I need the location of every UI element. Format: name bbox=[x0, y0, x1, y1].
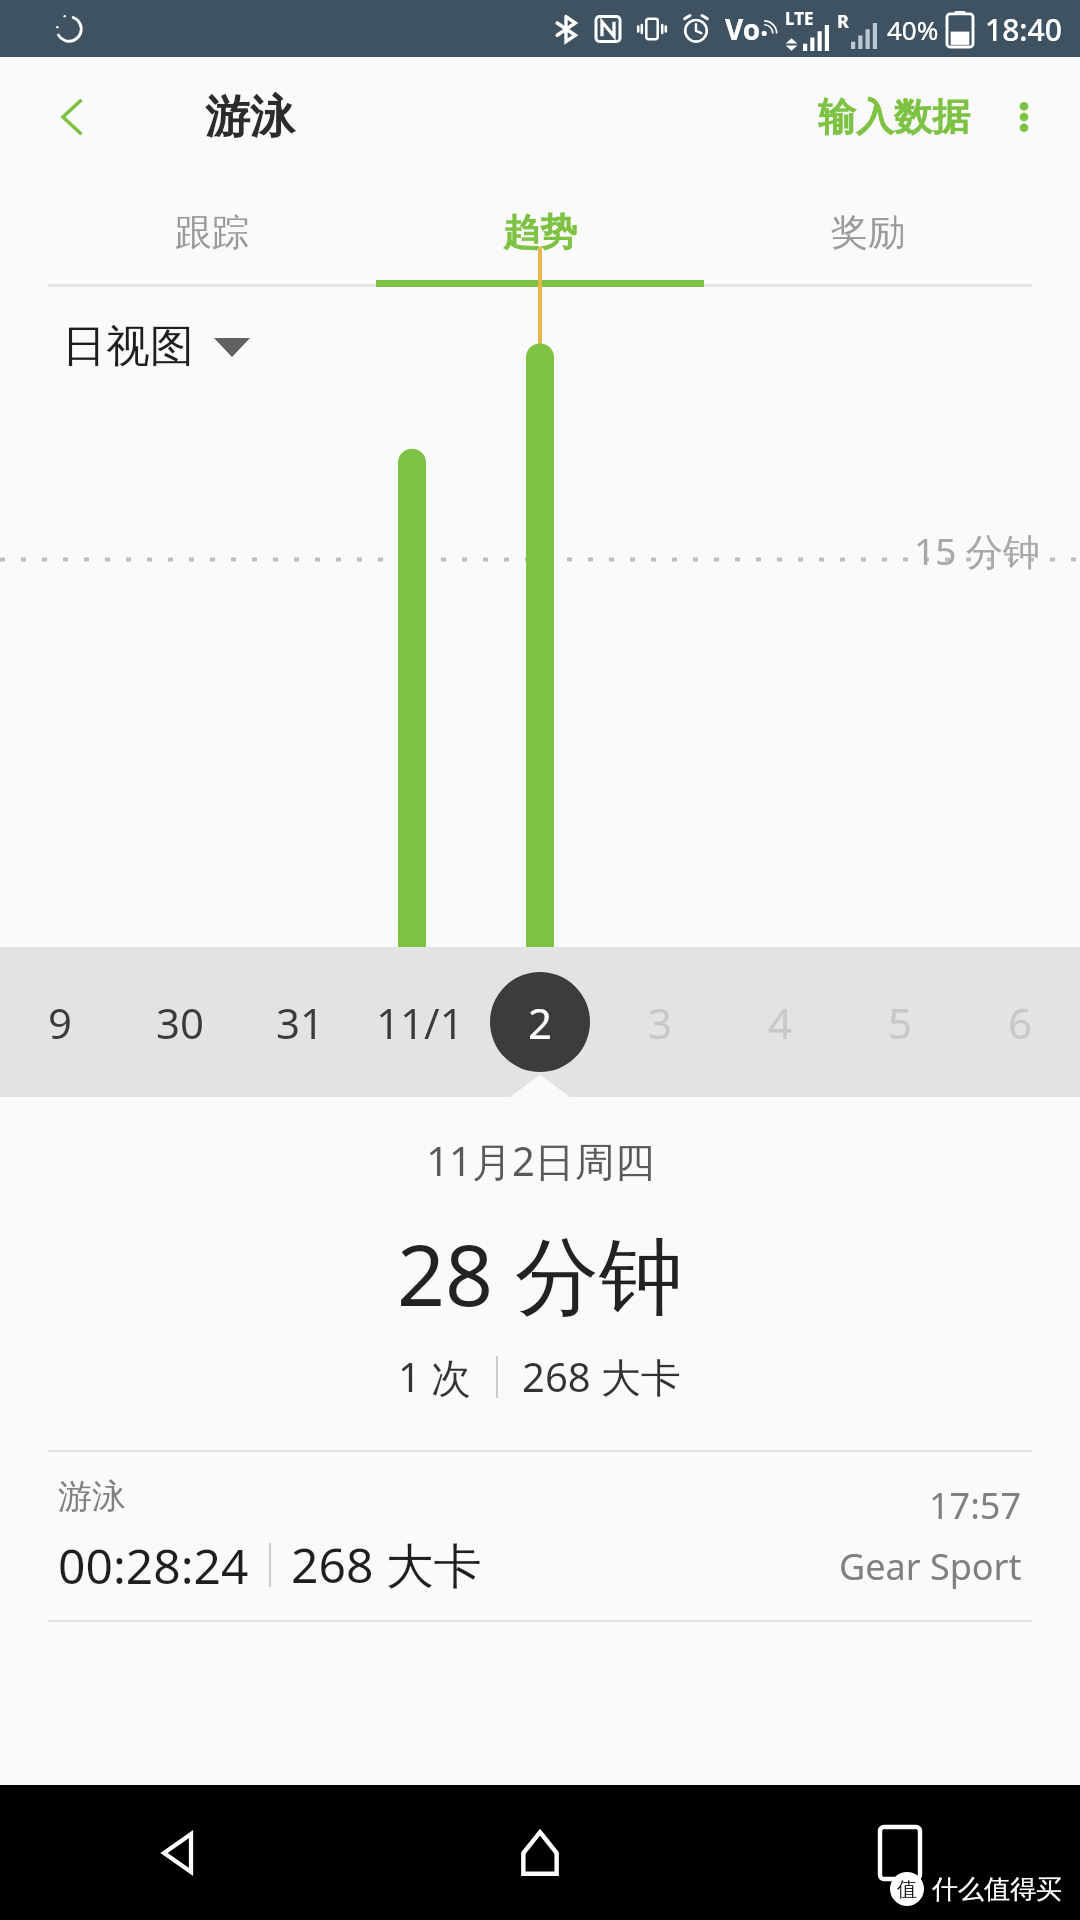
staticText: 15 分钟 bbox=[914, 525, 1040, 576]
staticText: 31 bbox=[276, 994, 325, 1051]
staticText: 4 bbox=[768, 994, 793, 1051]
staticText: 游泳 bbox=[205, 89, 295, 146]
staticText: 11月2日周四 bbox=[426, 1133, 655, 1188]
button[interactable]: 趋势 bbox=[376, 177, 704, 287]
staticText: R bbox=[837, 9, 849, 34]
staticText: LTE bbox=[785, 7, 814, 30]
staticText: 1 次 bbox=[398, 1349, 472, 1404]
staticText: 2 bbox=[528, 994, 553, 1051]
button[interactable]: 4 bbox=[720, 947, 840, 1097]
button[interactable]: 游泳 bbox=[0, 1452, 1080, 1620]
staticText: 18:40 bbox=[985, 9, 1062, 50]
staticText: 日视图 bbox=[62, 319, 194, 374]
staticText: 6 bbox=[1008, 994, 1033, 1051]
staticText: 268 大卡 bbox=[522, 1349, 682, 1404]
button[interactable]: Recent apps bbox=[720, 1785, 1080, 1920]
staticText: 趋势 bbox=[503, 209, 577, 256]
button[interactable]: Back bbox=[30, 74, 116, 160]
button[interactable]: 跟踪 bbox=[48, 177, 376, 287]
staticText: 5 bbox=[888, 994, 913, 1051]
button[interactable]: Home bbox=[360, 1785, 720, 1920]
button[interactable]: 6 bbox=[960, 947, 1080, 1097]
staticText: 奖励 bbox=[831, 209, 905, 256]
staticText: 28 分钟 bbox=[397, 1216, 683, 1331]
staticText: 268 大卡 bbox=[291, 1532, 482, 1598]
staticText: 17:57 bbox=[929, 1481, 1022, 1530]
staticText: 游泳 bbox=[58, 1475, 126, 1518]
staticText: 00:28:24 bbox=[58, 1533, 249, 1598]
button[interactable]: 日视图 bbox=[62, 319, 250, 374]
button[interactable]: 2 bbox=[480, 947, 600, 1097]
staticText: 跟踪 bbox=[175, 209, 249, 256]
staticText: 40% bbox=[887, 12, 939, 47]
button[interactable]: 奖励 bbox=[704, 177, 1032, 287]
staticText: 输入数据 bbox=[818, 93, 970, 141]
staticText: 30 bbox=[156, 994, 205, 1051]
staticText: 3 bbox=[648, 994, 673, 1051]
button[interactable]: 31 bbox=[240, 947, 360, 1097]
button[interactable]: 9 bbox=[0, 947, 120, 1097]
button[interactable]: 11/1 bbox=[360, 947, 480, 1097]
staticText: 11/1 bbox=[376, 994, 464, 1051]
staticText: Vo bbox=[725, 10, 761, 48]
staticText: 9 bbox=[48, 994, 73, 1051]
staticText: Gear Sport bbox=[839, 1542, 1022, 1591]
button[interactable]: 输入数据 bbox=[806, 75, 982, 159]
button[interactable]: 30 bbox=[120, 947, 240, 1097]
staticText: 什么值得买 bbox=[932, 1873, 1062, 1906]
button[interactable]: More options bbox=[982, 75, 1066, 159]
button[interactable]: Back bbox=[0, 1785, 360, 1920]
staticText: 值 bbox=[897, 1877, 917, 1902]
